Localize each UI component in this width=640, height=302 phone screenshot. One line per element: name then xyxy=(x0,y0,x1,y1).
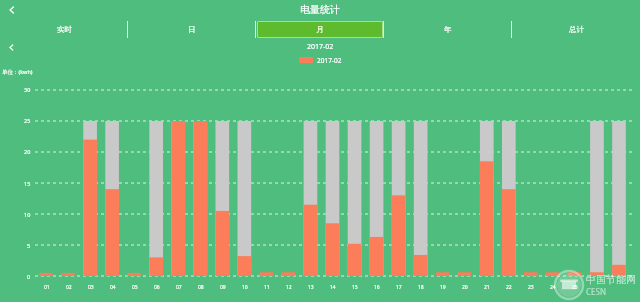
button[interactable]: Back xyxy=(0,0,24,19)
staticText: 12 xyxy=(286,284,292,291)
staticText: 23 xyxy=(528,284,534,291)
staticText: 15 xyxy=(24,180,31,187)
staticText: 08 xyxy=(198,284,204,291)
button[interactable]: 日 xyxy=(128,19,256,40)
staticText: 10 xyxy=(242,284,248,291)
staticText: 11 xyxy=(264,284,270,291)
staticText: CESN xyxy=(586,286,606,297)
staticText: 年 xyxy=(444,25,452,34)
staticText: 月 xyxy=(316,25,324,34)
staticText: 0 xyxy=(27,273,31,280)
staticText: 09 xyxy=(220,284,226,291)
staticText: 25 xyxy=(572,284,578,291)
staticText: 20 xyxy=(462,284,468,291)
staticText: 日 xyxy=(188,25,196,34)
staticText: 03 xyxy=(88,284,94,291)
staticText: 15 xyxy=(352,284,358,291)
staticText: 单位：(kwh) xyxy=(2,68,33,76)
staticText: 5 xyxy=(27,242,31,249)
staticText: 19 xyxy=(440,284,446,291)
staticText: 电量统计 xyxy=(300,3,340,16)
staticText: 06 xyxy=(154,284,160,291)
staticText: 20 xyxy=(24,148,31,155)
staticText: 30 xyxy=(24,86,31,93)
staticText: 实时 xyxy=(57,25,72,34)
staticText: 2017-02 xyxy=(317,56,342,65)
button[interactable]: 实时 xyxy=(0,19,128,40)
button[interactable]: Previous month xyxy=(0,40,22,54)
staticText: 16 xyxy=(374,284,380,291)
staticText: 04 xyxy=(110,284,116,291)
staticText: 22 xyxy=(506,284,512,291)
staticText: 25 xyxy=(24,117,31,124)
button[interactable]: 年 xyxy=(384,19,512,40)
staticText: 24 xyxy=(550,284,556,291)
staticText: 18 xyxy=(418,284,424,291)
staticText: 14 xyxy=(330,284,336,291)
staticText: 总计 xyxy=(569,25,584,34)
staticText: 02 xyxy=(66,284,72,291)
staticText: 13 xyxy=(308,284,314,291)
staticText: 07 xyxy=(176,284,182,291)
staticText: 01 xyxy=(44,284,50,291)
staticText: 05 xyxy=(132,284,138,291)
staticText: 21 xyxy=(484,284,490,291)
staticText: 17 xyxy=(396,284,402,291)
button[interactable]: 总计 xyxy=(512,19,640,40)
staticText: 10 xyxy=(24,211,31,218)
button[interactable]: 月 xyxy=(256,19,384,40)
staticText: 中国节能网 xyxy=(586,273,636,286)
staticText: 2017-02 xyxy=(307,42,334,52)
